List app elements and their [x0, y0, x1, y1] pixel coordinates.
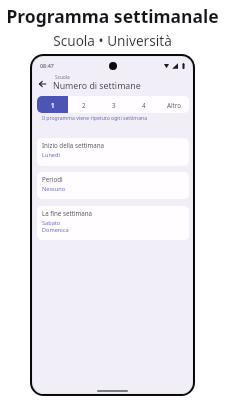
staticText: 4 [142, 101, 146, 109]
staticText: Scuola [55, 74, 70, 81]
button[interactable]: 2 [68, 96, 99, 113]
button[interactable]: Periodi [37, 172, 189, 199]
staticText: Il programma viene ripetuto ogni settima… [42, 115, 147, 122]
button[interactable]: La fine settimana [37, 206, 189, 240]
staticText: Sabato [42, 219, 61, 227]
staticText: Periodi [42, 175, 63, 183]
button[interactable]: Inizio della settimana [37, 138, 189, 166]
button[interactable]: Indietro [34, 76, 50, 92]
staticText: Domenica [42, 226, 69, 234]
staticText: 3 [112, 101, 116, 109]
staticText: Lunedì [42, 151, 60, 159]
staticText: 1 [51, 101, 55, 109]
staticText: 2 [82, 101, 86, 109]
staticText: La fine settimana [42, 209, 93, 217]
button[interactable]: 4 [129, 96, 159, 113]
staticText: Scuola • Università [0, 31, 225, 50]
button[interactable]: 3 [99, 96, 129, 113]
staticText: Inizio della settimana [42, 141, 105, 149]
staticText: Nessuno [42, 185, 66, 193]
staticText: 08:47 [40, 62, 54, 69]
button[interactable]: Altro [159, 96, 189, 113]
staticText: Numero di settimane [53, 80, 141, 92]
staticText: Altro [167, 101, 181, 109]
button[interactable]: 1 [37, 96, 68, 113]
staticText: Programma settimanale [0, 4, 225, 28]
